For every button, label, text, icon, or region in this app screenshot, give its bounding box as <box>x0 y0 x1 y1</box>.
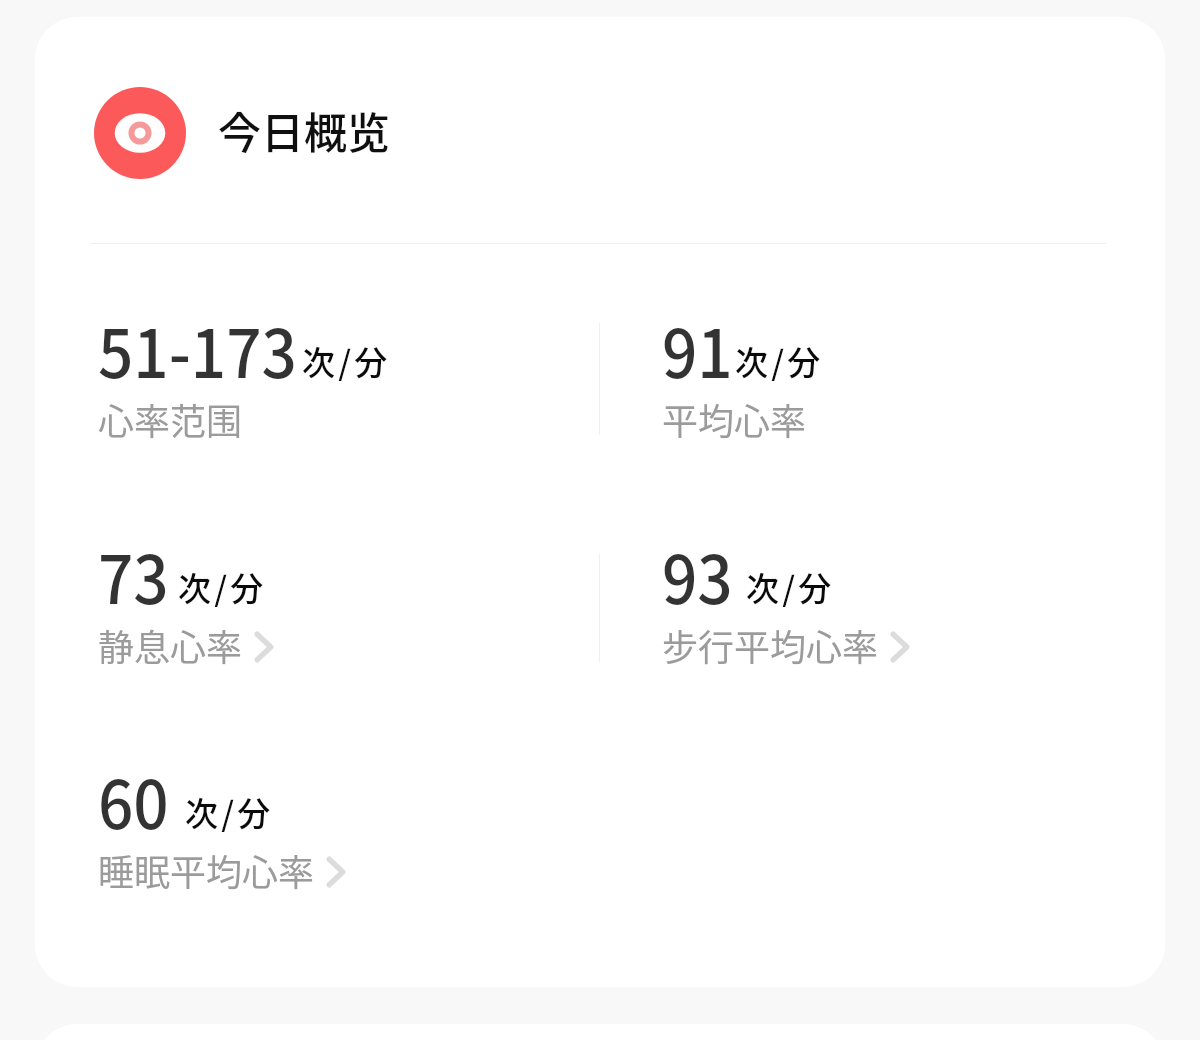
staticText: 次/分 <box>178 563 267 611</box>
staticText: 93 <box>662 527 733 623</box>
staticText: 次/分 <box>185 788 274 836</box>
staticText: 91 <box>662 301 733 397</box>
staticText: 次/分 <box>746 563 835 611</box>
button[interactable]: 60 <box>98 775 538 895</box>
staticText: 睡眠平均心率 <box>98 844 315 896</box>
staticText: 次/分 <box>735 337 824 385</box>
staticText: 平均心率 <box>662 393 807 445</box>
staticText: 今日概览 <box>218 99 390 161</box>
staticText: 次/分 <box>302 337 391 385</box>
staticText: 51-173 <box>98 301 297 397</box>
staticText: 60 <box>98 752 169 848</box>
button[interactable]: 91 <box>662 324 1102 444</box>
other: Show details <box>890 629 910 665</box>
staticText: 步行平均心率 <box>662 619 879 671</box>
button[interactable]: 73 <box>98 550 538 670</box>
button[interactable]: Overview <box>35 87 1165 179</box>
staticText: 心率范围 <box>98 393 243 445</box>
other: Show details <box>326 854 346 890</box>
staticText: 73 <box>98 527 169 623</box>
staticText: 静息心率 <box>98 619 243 671</box>
other: Overview <box>94 87 186 179</box>
button[interactable]: 93 <box>662 550 1102 670</box>
other: Show details <box>254 629 274 665</box>
button[interactable]: 51-173 <box>98 324 538 444</box>
